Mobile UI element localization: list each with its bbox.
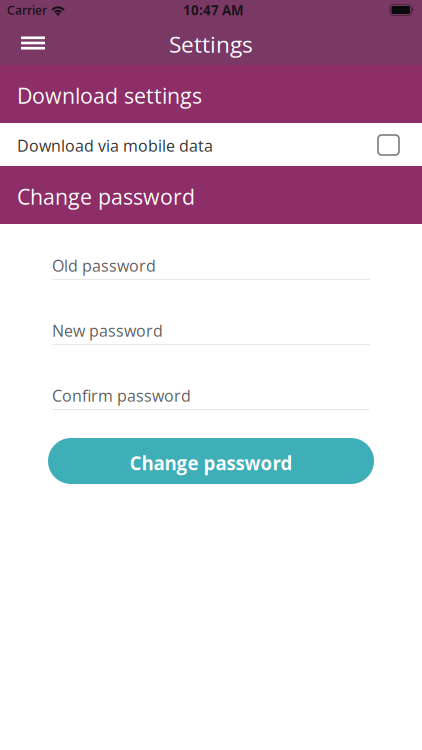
button[interactable]: Download via mobile data	[0, 123, 422, 166]
button[interactable]: Change password	[48, 438, 374, 484]
staticText: Change password	[129, 450, 292, 476]
button[interactable]: New password	[52, 317, 370, 345]
staticText: 10:47 AM	[183, 1, 244, 19]
staticText: Download via mobile data	[17, 135, 213, 156]
staticText: Old password	[52, 255, 156, 276]
staticText: Change password	[17, 182, 195, 211]
button[interactable]: Old password	[52, 252, 370, 280]
staticText: Settings	[169, 29, 253, 59]
staticText: Download settings	[17, 81, 202, 110]
staticText: Carrier	[7, 2, 47, 18]
staticText: Confirm password	[52, 385, 191, 406]
button[interactable]: Menu	[11, 20, 55, 65]
staticText: New password	[52, 320, 163, 341]
button[interactable]: Confirm password	[52, 382, 370, 410]
